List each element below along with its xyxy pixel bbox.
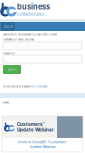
staticText: News <box>3 101 9 104</box>
staticText: Welcome to the Business Collaborator Ser… <box>3 33 57 36</box>
staticText: Update Webinar <box>29 145 55 149</box>
staticText: Username or email address <box>3 38 34 41</box>
button[interactable]: Customers' <box>0 116 85 152</box>
staticText: Invite to GroupBC Customers' <box>18 140 67 144</box>
staticText: Log in <box>8 68 16 71</box>
staticText: Customers' <box>17 121 45 127</box>
staticText: Click here <box>36 85 47 88</box>
button[interactable]: Log in <box>3 65 21 74</box>
staticText: Log in <box>4 25 12 28</box>
staticText: Forgotten your password? <box>3 85 35 88</box>
staticText: collaborator <box>17 11 45 17</box>
staticText: Update Webinar <box>17 127 54 132</box>
staticText: business <box>17 2 50 11</box>
staticText: Password <box>3 52 15 55</box>
button[interactable]: Log in <box>1 22 15 31</box>
button[interactable]: Click here <box>36 85 47 88</box>
